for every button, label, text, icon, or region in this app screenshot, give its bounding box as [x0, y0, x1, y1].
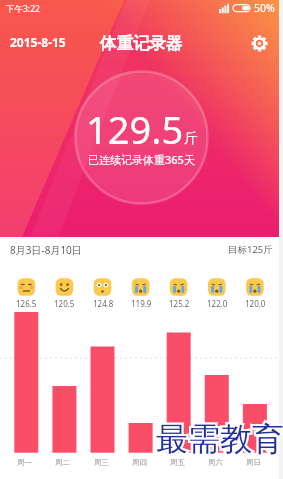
staticText: 129.5: [86, 103, 184, 155]
staticText: 周日: [246, 458, 261, 467]
staticText: 124.8: [93, 298, 114, 309]
staticText: 8月3日-8月10日: [10, 243, 82, 257]
button[interactable]: 周二: [22, 458, 102, 467]
staticText: 126.5: [16, 298, 37, 309]
button[interactable]: 8月3日-8月10日: [10, 243, 82, 257]
button[interactable]: 周一: [0, 458, 64, 467]
staticText: 最需教育: [156, 419, 283, 459]
staticText: 目标125斤: [228, 243, 273, 256]
staticText: 119.9: [131, 298, 152, 309]
staticText: 周一: [17, 458, 32, 467]
staticText: 120.5: [54, 298, 75, 309]
staticText: 122.0: [207, 298, 228, 309]
button[interactable]: 周四: [99, 458, 179, 467]
button[interactable]: 周三: [61, 458, 141, 467]
staticText: 已连续记录体重365天: [88, 152, 195, 167]
staticText: 下午3:22: [6, 3, 40, 15]
staticText: 周五: [170, 458, 185, 467]
staticText: 周三: [94, 458, 109, 467]
button[interactable]: 周五: [137, 458, 217, 467]
staticText: 120.0: [245, 298, 266, 309]
button[interactable]: 周日: [213, 458, 283, 467]
staticText: 体重记录器: [100, 33, 183, 54]
staticText: 周四: [132, 458, 147, 467]
button[interactable]: 目标125斤: [195, 243, 273, 256]
staticText: 50%: [254, 1, 275, 15]
staticText: 斤: [184, 130, 198, 148]
button[interactable]: [248, 32, 270, 54]
staticText: 最需教育: [156, 419, 283, 459]
staticText: 周二: [55, 458, 70, 467]
staticText: 周六: [208, 458, 223, 467]
button[interactable]: [76, 72, 208, 204]
staticText: 2015-8-15: [10, 34, 66, 50]
button[interactable]: 2015-8-15: [10, 34, 66, 50]
staticText: 125.2: [169, 298, 190, 309]
button[interactable]: 周六: [175, 458, 255, 467]
